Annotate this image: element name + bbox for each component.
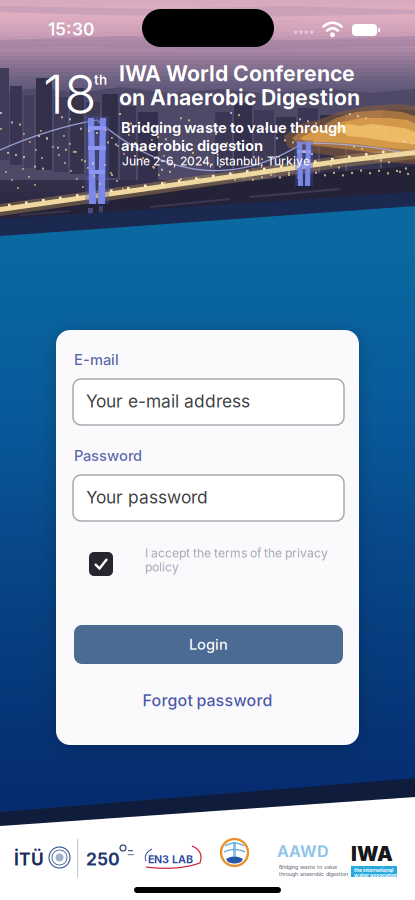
- staticText: I accept the terms of the privacy: [145, 546, 328, 560]
- staticText: anaerobic digestion: [121, 137, 263, 154]
- staticText: policy: [145, 560, 179, 574]
- staticText: Login: [189, 636, 228, 653]
- staticText: June 2-6, 2024, İstanbul, Türkiye: [122, 154, 310, 168]
- staticText: Your password: [86, 487, 208, 507]
- staticText: IWA: [351, 842, 393, 866]
- staticText: on Anaerobic Digestion: [119, 85, 360, 110]
- staticText: water association: [354, 872, 398, 878]
- staticText: 250: [86, 849, 120, 869]
- staticText: EN3 LAB: [148, 853, 193, 866]
- staticText: IWA World Conference: [119, 61, 355, 86]
- staticText: Bridging waste to value through: [121, 119, 346, 136]
- staticText: AAWD: [277, 842, 329, 861]
- button[interactable]: Your e-mail address: [73, 379, 344, 425]
- button[interactable]: Login: [74, 625, 343, 664]
- staticText: 15:30: [48, 19, 94, 39]
- button[interactable]: Your password: [73, 475, 344, 521]
- staticText: th: [94, 72, 107, 88]
- staticText: the international: [354, 867, 393, 873]
- staticText: İTÜ: [14, 849, 44, 869]
- staticText: E-mail: [74, 351, 119, 368]
- staticText: Bridging waste to value: [279, 864, 337, 870]
- button[interactable]: I accept the terms of the privacy policy: [89, 552, 113, 576]
- staticText: 18: [43, 63, 97, 126]
- staticText: Your e-mail address: [86, 391, 250, 411]
- button[interactable]: Forgot password: [142, 691, 272, 710]
- staticText: Forgot password: [142, 691, 272, 710]
- staticText: Password: [74, 447, 142, 464]
- staticText: through anaerobic digestion: [279, 871, 348, 877]
